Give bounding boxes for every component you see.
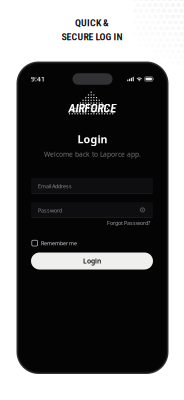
staticText: Remember me <box>41 240 77 247</box>
staticText: SECURE LOG IN <box>61 31 122 43</box>
staticText: AIRFORCE <box>68 101 116 116</box>
staticText: Login <box>77 132 107 146</box>
staticText: Forgot Password? <box>107 219 150 226</box>
staticText: Password <box>38 207 62 214</box>
staticText: Welcome back to Laporce app. <box>44 150 141 159</box>
button[interactable]: Forgot Password? <box>31 219 150 226</box>
staticText: 9:41 <box>31 75 45 83</box>
button[interactable]: Login <box>31 252 153 269</box>
button[interactable]: Email Address <box>31 178 153 194</box>
staticText: QUICK & <box>75 17 109 29</box>
staticText: Login <box>83 257 101 265</box>
staticText: Email Address <box>38 183 72 190</box>
button[interactable]: Password <box>31 202 153 218</box>
button[interactable]: Remember me <box>32 240 154 247</box>
